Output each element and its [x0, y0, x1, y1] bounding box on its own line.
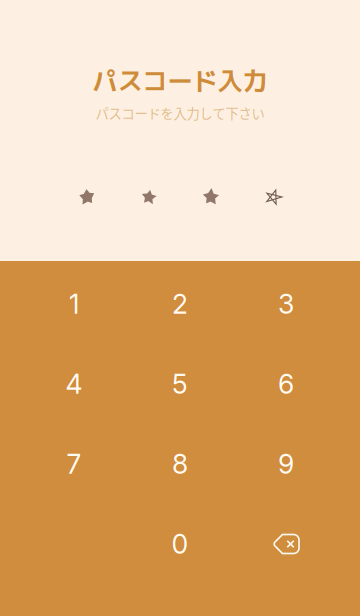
staticText: 9 — [278, 448, 294, 480]
button[interactable]: 1 — [21, 264, 127, 344]
staticText: 5 — [172, 368, 188, 400]
staticText: 3 — [278, 288, 294, 320]
button[interactable]: 5 — [127, 344, 233, 424]
staticText: 1 — [69, 288, 79, 320]
button[interactable]: 8 — [127, 424, 233, 504]
button[interactable]: 7 — [21, 424, 127, 504]
button[interactable]: 2 — [127, 264, 233, 344]
button[interactable]: 9 — [233, 424, 339, 504]
staticText: 0 — [171, 528, 188, 560]
staticText: 4 — [65, 368, 82, 400]
staticText: 6 — [278, 368, 294, 400]
staticText: パスコードを入力して下さい — [95, 103, 264, 123]
button[interactable]: 3 — [233, 264, 339, 344]
button[interactable]: 0 — [127, 504, 233, 584]
button[interactable]: 6 — [233, 344, 339, 424]
button[interactable]: 4 — [21, 344, 127, 424]
staticText: 2 — [172, 288, 188, 320]
button[interactable]: Delete — [233, 504, 339, 584]
staticText: 8 — [172, 448, 188, 480]
staticText: パスコード入力 — [92, 63, 267, 98]
staticText: 7 — [66, 448, 81, 480]
